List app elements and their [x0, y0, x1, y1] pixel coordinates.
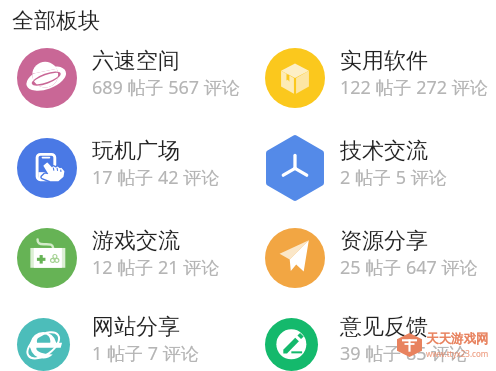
staticText: 17 帖子 42 评论 [92, 165, 220, 190]
button[interactable]: 网站分享 [0, 318, 248, 371]
staticText: 全部板块 [12, 7, 100, 35]
staticText: 网站分享 [92, 313, 180, 341]
staticText: 25 帖子 647 评论 [340, 255, 478, 280]
staticText: 实用软件 [340, 47, 428, 75]
staticText: 六速空间 [92, 47, 180, 75]
staticText: 天天游戏网 [426, 331, 489, 347]
staticText: 资源分享 [340, 227, 428, 255]
staticText: 12 帖子 21 评论 [92, 255, 220, 280]
button[interactable]: 六速空间 [0, 48, 248, 108]
staticText: 技术交流 [340, 137, 428, 165]
button[interactable]: 游戏交流 [0, 228, 248, 288]
staticText: 游戏交流 [92, 227, 180, 255]
staticText: 2 帖子 5 评论 [340, 165, 447, 190]
staticText: www.ttyx23.com [426, 348, 489, 359]
staticText: 39 帖子 85 评论 [340, 341, 468, 366]
staticText: 意见反馈 [340, 313, 428, 341]
staticText: 1 帖子 7 评论 [92, 341, 199, 366]
button[interactable]: 玩机广场 [0, 138, 248, 198]
button[interactable]: 资源分享 [248, 228, 496, 288]
button[interactable]: 意见反馈 [248, 318, 496, 371]
button[interactable]: 技术交流 [248, 138, 496, 198]
button[interactable]: 实用软件 [248, 48, 496, 108]
staticText: 689 帖子 567 评论 [92, 75, 240, 100]
staticText: 玩机广场 [92, 137, 180, 165]
staticText: 122 帖子 272 评论 [340, 75, 488, 100]
